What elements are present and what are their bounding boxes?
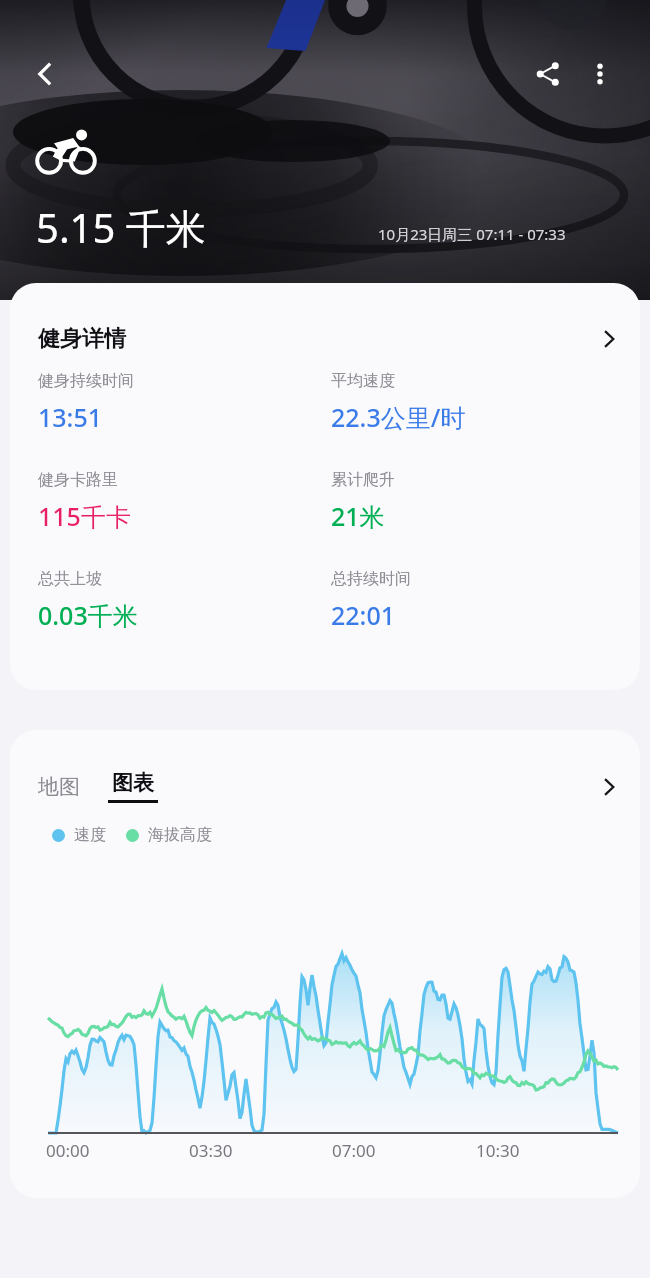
staticText: 21米 bbox=[331, 499, 385, 533]
button[interactable]: Open chart bbox=[600, 778, 618, 796]
button[interactable]: 健身详情 bbox=[10, 283, 640, 371]
button[interactable]: More options bbox=[574, 48, 626, 100]
staticText: 0.03千米 bbox=[38, 598, 138, 632]
staticText: 13:51 bbox=[38, 400, 103, 434]
staticText: 健身持续时间 bbox=[38, 371, 134, 391]
staticText: 总持续时间 bbox=[331, 569, 411, 589]
staticText: 10:30 bbox=[476, 1139, 620, 1162]
staticText: 健身详情 bbox=[38, 325, 126, 353]
staticText: 00:00 bbox=[46, 1139, 189, 1162]
staticText: 03:30 bbox=[189, 1139, 332, 1162]
staticText: 地图 bbox=[38, 774, 80, 800]
staticText: 累计爬升 bbox=[331, 470, 395, 490]
staticText: 22:01 bbox=[331, 598, 396, 632]
button[interactable]: Share bbox=[522, 48, 574, 100]
staticText: 5.15 千米 bbox=[36, 200, 206, 255]
staticText: 22.3公里/时 bbox=[331, 400, 466, 434]
staticText: 07:00 bbox=[332, 1139, 476, 1162]
staticText: 总共上坡 bbox=[38, 569, 102, 589]
staticText: 115千卡 bbox=[38, 499, 131, 533]
button[interactable]: 地图 bbox=[38, 774, 86, 800]
staticText: 平均速度 bbox=[331, 371, 395, 391]
staticText: 健身卡路里 bbox=[38, 470, 118, 490]
button[interactable]: Back bbox=[20, 48, 72, 100]
staticText: 海拔高度 bbox=[148, 825, 212, 845]
button[interactable]: 图表 bbox=[108, 770, 158, 803]
staticText: 速度 bbox=[74, 825, 106, 845]
staticText: 10月23日周三 07:11 - 07:33 bbox=[378, 224, 566, 244]
staticText: 图表 bbox=[112, 770, 154, 796]
